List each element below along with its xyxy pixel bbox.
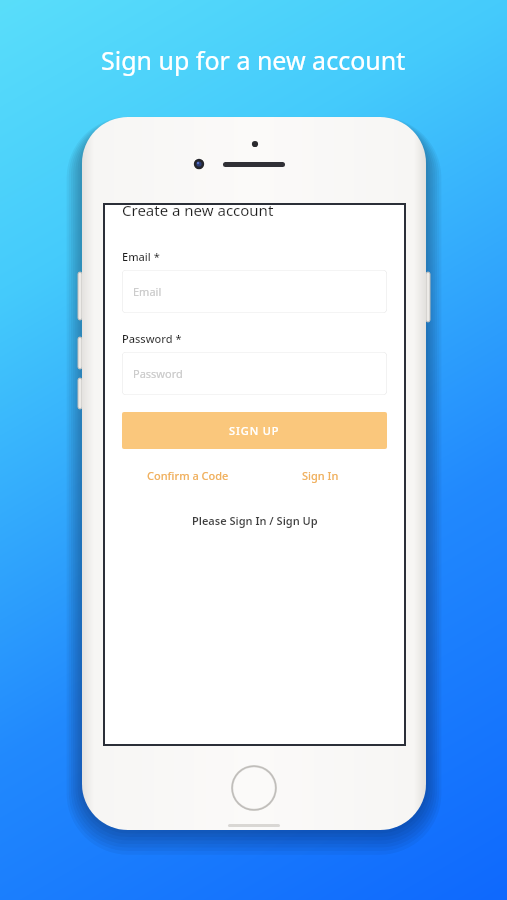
button[interactable]: Email [122, 270, 387, 313]
staticText: Password * [122, 331, 182, 346]
staticText: Please Sign In / Sign Up [192, 513, 318, 528]
button[interactable]: Sign In [254, 468, 387, 483]
staticText: Password [133, 366, 183, 381]
button[interactable]: Confirm a Code [122, 468, 254, 483]
staticText: Create a new account [122, 200, 274, 220]
button[interactable]: Home [231, 765, 277, 811]
staticText: Email [133, 284, 162, 299]
button[interactable]: SIGN UP [122, 412, 387, 449]
staticText: Confirm a Code [147, 468, 229, 483]
staticText: Email * [122, 249, 160, 264]
staticText: Sign In [302, 468, 339, 483]
staticText: SIGN UP [229, 423, 280, 438]
button[interactable]: Password [122, 352, 387, 395]
staticText: Sign up for a new account [101, 43, 406, 77]
